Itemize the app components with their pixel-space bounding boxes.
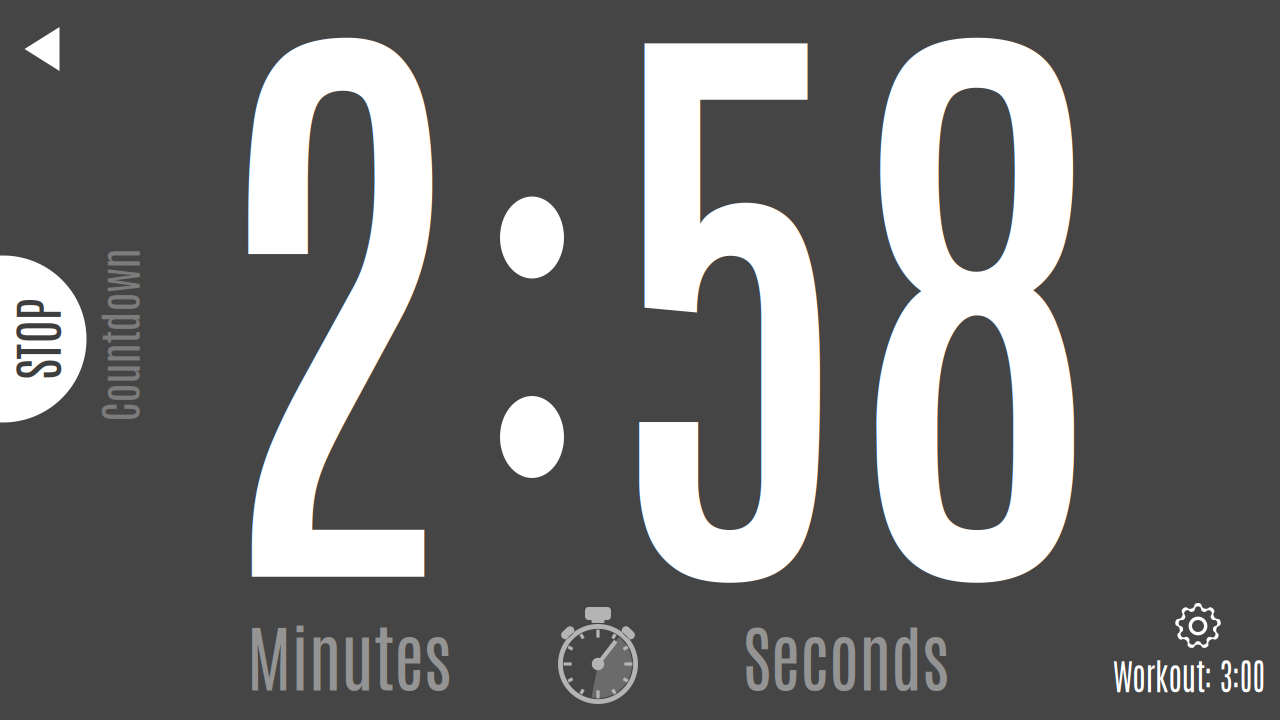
button[interactable]: Workout: 3:00 [0,0,1280,720]
staticText: Countdown [31,307,204,363]
staticText: Minutes [243,607,455,701]
button[interactable]: Stopwatch [538,596,658,716]
button[interactable]: STOP [0,0,1280,720]
staticText: Seconds [737,607,955,701]
button[interactable]: Back [8,11,75,87]
staticText: STOP [0,306,75,372]
staticText: Workout: 3:00 [1098,651,1279,697]
staticText: 2:58 [188,0,1113,663]
